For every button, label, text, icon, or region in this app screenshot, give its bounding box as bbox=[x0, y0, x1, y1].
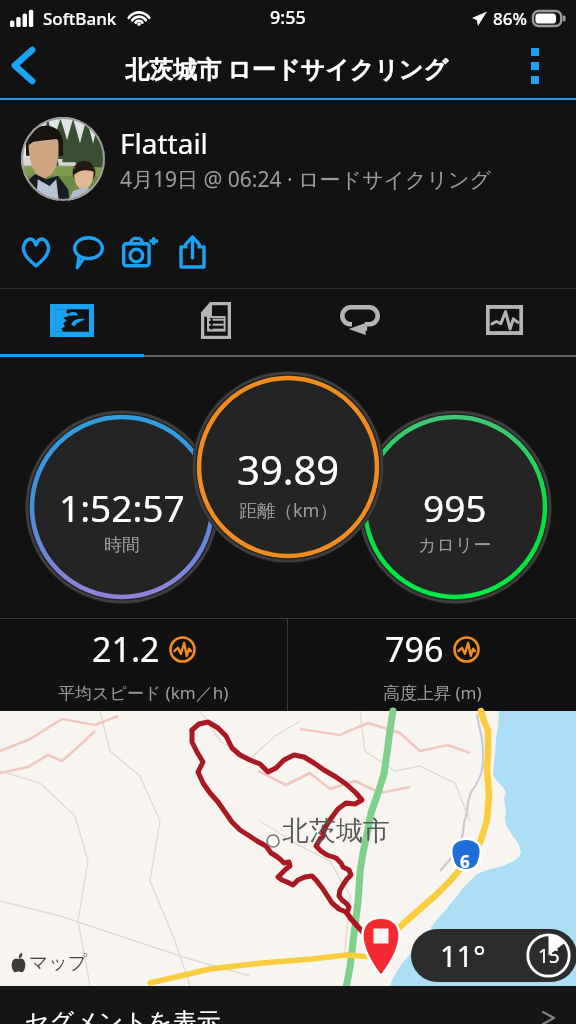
button[interactable]: Share bbox=[166, 218, 218, 288]
staticText: 北茨城市 ロードサイクリング bbox=[125, 52, 448, 85]
staticText: カロリー bbox=[418, 534, 492, 557]
button[interactable]: Details bbox=[144, 289, 288, 357]
button[interactable]: 11° bbox=[411, 929, 576, 982]
staticText: SoftBank bbox=[43, 7, 117, 30]
staticText: 時間 bbox=[104, 534, 140, 557]
staticText: 21.2 bbox=[92, 626, 160, 672]
staticText: 6 bbox=[460, 850, 470, 873]
button[interactable]: More options bbox=[504, 40, 576, 98]
button[interactable]: Add photo bbox=[114, 218, 166, 288]
button[interactable]: Analysis bbox=[432, 289, 576, 357]
button[interactable]: Laps bbox=[288, 289, 432, 357]
staticText: 9:55 bbox=[270, 5, 306, 30]
staticText: 平均スピード (km／h) bbox=[58, 681, 229, 704]
staticText: セグメントを表示 bbox=[25, 1007, 221, 1024]
button[interactable]: Comment bbox=[62, 218, 114, 288]
button[interactable]: Photos bbox=[0, 289, 144, 357]
staticText: 796 bbox=[385, 626, 444, 672]
staticText: 1:52:57 bbox=[59, 482, 185, 532]
staticText: 15 bbox=[538, 943, 560, 969]
staticText: 4月19日 @ 06:24 · ロードサイクリング bbox=[120, 165, 491, 194]
staticText: 995 bbox=[423, 482, 487, 532]
button[interactable]: セグメントを表示 bbox=[0, 986, 576, 1024]
staticText: マップ bbox=[29, 951, 88, 975]
staticText: Flattail bbox=[120, 124, 208, 162]
staticText: 86% bbox=[493, 7, 527, 30]
button[interactable]: 796 bbox=[288, 619, 576, 711]
staticText: 11° bbox=[440, 936, 486, 975]
button[interactable]: 21.2 bbox=[0, 619, 287, 711]
button[interactable]: Like bbox=[10, 218, 62, 288]
staticText: 39.89 bbox=[237, 442, 340, 496]
button[interactable]: 北茨城市 bbox=[0, 711, 576, 986]
staticText: 北茨城市 bbox=[282, 814, 390, 848]
staticText: 距離（km） bbox=[239, 498, 338, 523]
staticText: 高度上昇 (m) bbox=[383, 681, 482, 704]
button[interactable]: Flattail bbox=[0, 100, 576, 218]
button[interactable]: Back bbox=[0, 40, 48, 98]
